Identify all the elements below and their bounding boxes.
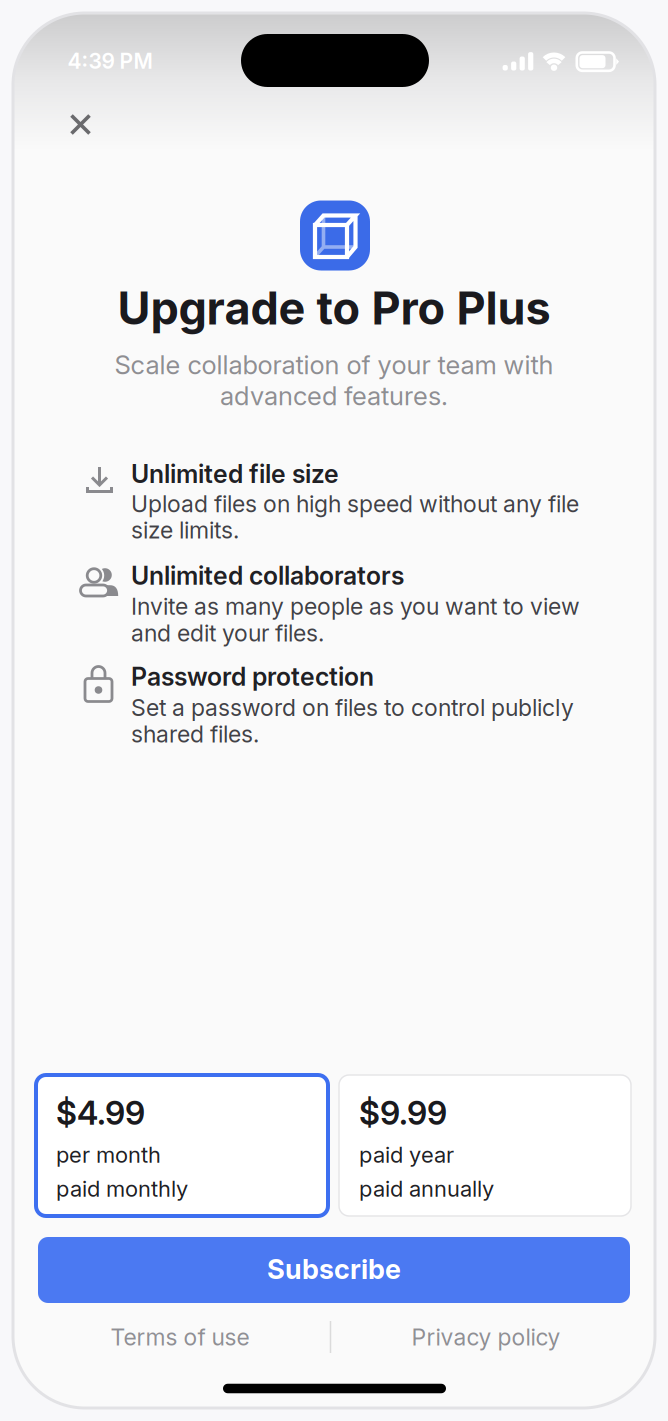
staticText: advanced features. <box>220 380 448 411</box>
staticText: 4:39 PM <box>67 48 152 74</box>
staticText: Unlimited file size <box>131 459 339 489</box>
staticText: paid monthly <box>56 1175 188 1202</box>
staticText: and edit your files. <box>131 619 324 647</box>
staticText: paid year <box>359 1141 454 1168</box>
staticText: size limits. <box>131 516 239 544</box>
staticText: Unlimited collaborators <box>131 561 404 591</box>
staticText: shared files. <box>131 720 259 748</box>
staticText: $4.99 <box>56 1093 145 1132</box>
staticText: Scale collaboration of your team with <box>114 349 553 380</box>
staticText: Password protection <box>131 662 374 692</box>
staticText: Invite as many people as you want to vie… <box>131 592 580 620</box>
staticText: Terms of use <box>110 1323 249 1351</box>
staticText: Upgrade to Pro Plus <box>117 281 550 335</box>
staticText: Upload files on high speed without any f… <box>131 490 579 518</box>
staticText: paid annually <box>359 1175 494 1202</box>
staticText: Set a password on files to control publi… <box>131 694 574 722</box>
staticText: Subscribe <box>267 1253 401 1285</box>
staticText: $9.99 <box>359 1093 447 1132</box>
staticText: Privacy policy <box>411 1323 560 1351</box>
staticText: per month <box>56 1141 161 1168</box>
